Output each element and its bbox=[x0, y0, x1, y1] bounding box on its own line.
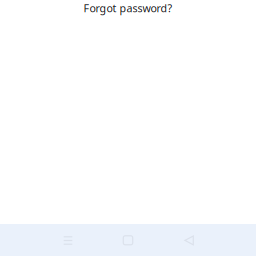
button[interactable]: Forgot password? bbox=[83, 0, 172, 15]
staticText: Forgot password? bbox=[83, 1, 172, 15]
